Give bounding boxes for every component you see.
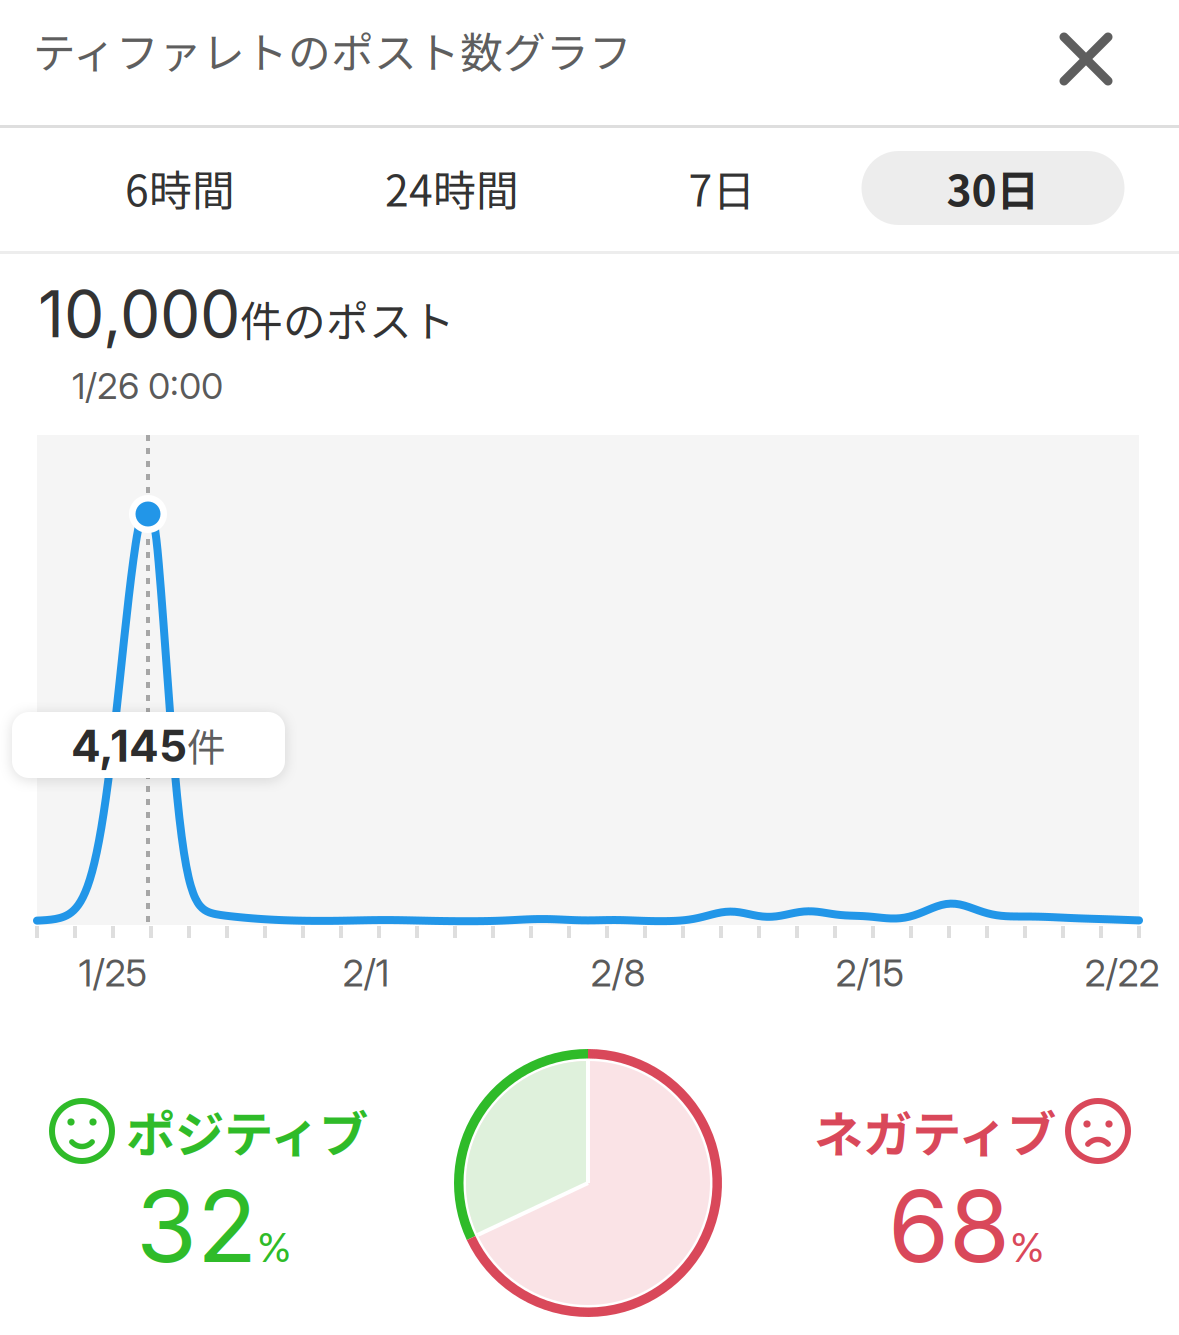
staticText: 24時間 (385, 157, 519, 219)
staticText: 2/22 (1084, 950, 1159, 996)
staticText: 32 (136, 1166, 257, 1286)
staticText: 1/26 0:00 (72, 364, 223, 408)
button[interactable]: 7日 (586, 127, 858, 249)
staticText: 件 (187, 717, 226, 773)
button[interactable]: 6時間 (44, 127, 316, 249)
button[interactable]: 閉じる (1046, 19, 1126, 99)
staticText: 6時間 (125, 157, 235, 219)
staticText: 2/15 (835, 950, 904, 996)
staticText: 68 (888, 1166, 1010, 1286)
staticText: 件のポスト (240, 288, 455, 350)
staticText: % (257, 1223, 291, 1271)
staticText: 1/25 (78, 950, 147, 996)
button[interactable]: 24時間 (316, 127, 588, 249)
staticText: ネガティブ (814, 1095, 1056, 1167)
staticText: ティファレトのポスト数グラフ (33, 19, 632, 81)
staticText: 10,000 (38, 275, 240, 353)
staticText: ポジティブ (126, 1095, 368, 1167)
button[interactable]: 30日 (857, 127, 1129, 249)
staticText: 30日 (946, 157, 1039, 219)
staticText: % (1010, 1223, 1044, 1271)
staticText: 7日 (688, 157, 755, 219)
staticText: 4,145 (71, 719, 187, 772)
staticText: 2/1 (342, 950, 389, 996)
staticText: 2/8 (590, 950, 645, 996)
